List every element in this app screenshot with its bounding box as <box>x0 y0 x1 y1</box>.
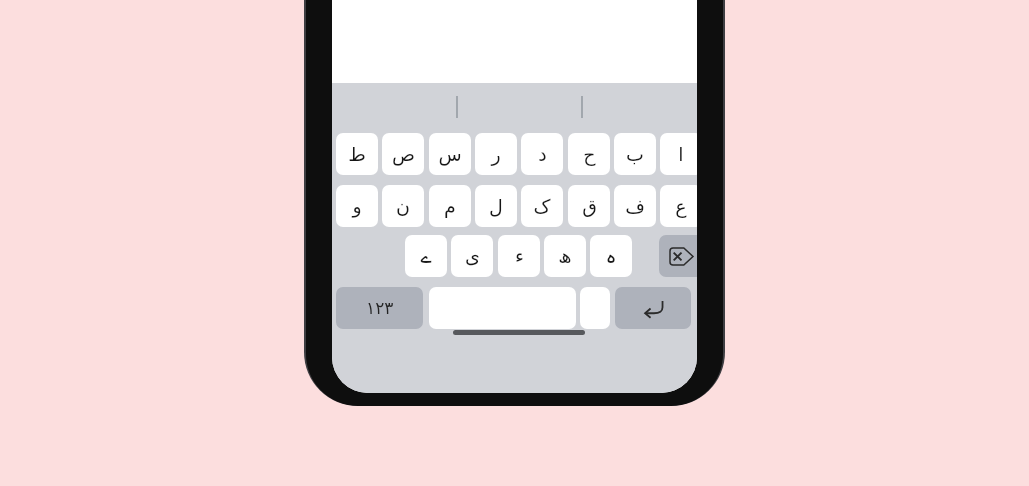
staticText: ا <box>678 143 684 165</box>
button[interactable]: ۱۲۳ <box>336 287 423 329</box>
button[interactable]: Enter <box>615 287 691 329</box>
staticText: ء <box>515 245 524 267</box>
button[interactable]: Backspace <box>659 235 697 277</box>
button[interactable]: ب <box>614 133 656 175</box>
staticText: ع <box>675 195 687 217</box>
button[interactable]: ص <box>382 133 424 175</box>
staticText: د <box>538 143 547 165</box>
button[interactable]: ح <box>568 133 610 175</box>
button[interactable]: ع <box>660 185 697 227</box>
staticText: ے <box>420 245 432 267</box>
button[interactable]: ی <box>451 235 493 277</box>
staticText: ط <box>348 143 366 165</box>
staticText: ر <box>491 143 501 165</box>
button[interactable]: ل <box>475 185 517 227</box>
button[interactable]: ط <box>336 133 378 175</box>
staticText: ک <box>533 195 551 217</box>
staticText: ق <box>582 195 597 217</box>
button[interactable]: س <box>429 133 471 175</box>
staticText: س <box>438 143 462 165</box>
staticText: و <box>352 195 362 217</box>
staticText: ۱۲۳ <box>366 298 394 318</box>
staticText: ن <box>396 195 410 217</box>
staticText: ی <box>465 245 480 267</box>
button[interactable]: ق <box>568 185 610 227</box>
button[interactable]: ے <box>405 235 447 277</box>
button[interactable]: Key <box>580 287 610 329</box>
staticText: ح <box>583 143 596 165</box>
button[interactable]: د <box>521 133 563 175</box>
staticText: ھ <box>558 245 572 267</box>
button[interactable]: ک <box>521 185 563 227</box>
button[interactable]: ا <box>660 133 697 175</box>
button[interactable]: ر <box>475 133 517 175</box>
staticText: ب <box>626 143 644 165</box>
staticText: ہ <box>605 245 617 267</box>
button[interactable]: م <box>429 185 471 227</box>
button[interactable]: و <box>336 185 378 227</box>
button[interactable]: Space <box>429 287 576 329</box>
staticText: ص <box>392 143 415 165</box>
staticText: م <box>444 195 456 217</box>
button[interactable]: ہ <box>590 235 632 277</box>
button[interactable]: ن <box>382 185 424 227</box>
button[interactable]: ف <box>614 185 656 227</box>
staticText: ل <box>489 195 503 217</box>
button[interactable]: ء <box>498 235 540 277</box>
button[interactable]: ھ <box>544 235 586 277</box>
staticText: ف <box>625 195 645 217</box>
